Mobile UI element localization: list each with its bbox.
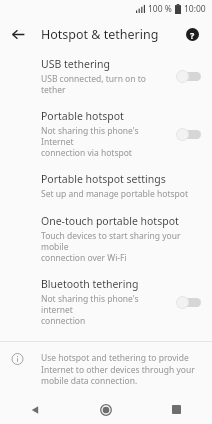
button[interactable]: Portable hotspot <box>0 102 212 165</box>
staticText: Touch devices to start sharing your mobi… <box>41 230 202 263</box>
staticText: Portable hotspot <box>41 109 124 123</box>
staticText: Not sharing this phone's Internet connec… <box>41 125 170 158</box>
staticText: ? <box>190 29 195 41</box>
button[interactable]: Back <box>7 23 29 45</box>
button[interactable]: Back <box>0 395 70 424</box>
staticText: Bluetooth tethering <box>41 277 139 291</box>
staticText: USB connected, turn on to tether <box>41 73 170 95</box>
staticText: Hotspot & tethering <box>41 26 159 43</box>
button[interactable]: Toggle <box>176 127 202 141</box>
button[interactable]: Bluetooth tethering <box>0 270 212 333</box>
staticText: One-touch portable hotspot <box>41 214 179 228</box>
button[interactable]: Home <box>70 395 141 424</box>
staticText: Not sharing this phone's internet connec… <box>41 293 170 326</box>
button[interactable]: Portable hotspot settings <box>0 165 212 207</box>
button[interactable]: One-touch portable hotspot <box>0 207 212 270</box>
staticText: Set up and manage portable hotspot <box>41 188 188 200</box>
staticText: Use hotspot and tethering to provide Int… <box>41 352 195 387</box>
button[interactable]: Recents <box>141 395 212 424</box>
button[interactable]: USB tethering <box>0 50 212 102</box>
staticText: 100 % <box>148 3 172 15</box>
button[interactable]: Help <box>181 23 203 45</box>
staticText: 10:00 <box>184 3 206 15</box>
staticText: Portable hotspot settings <box>41 172 166 186</box>
staticText: USB tethering <box>41 57 110 71</box>
button[interactable]: Toggle <box>176 295 202 309</box>
button[interactable]: Toggle <box>176 69 202 83</box>
